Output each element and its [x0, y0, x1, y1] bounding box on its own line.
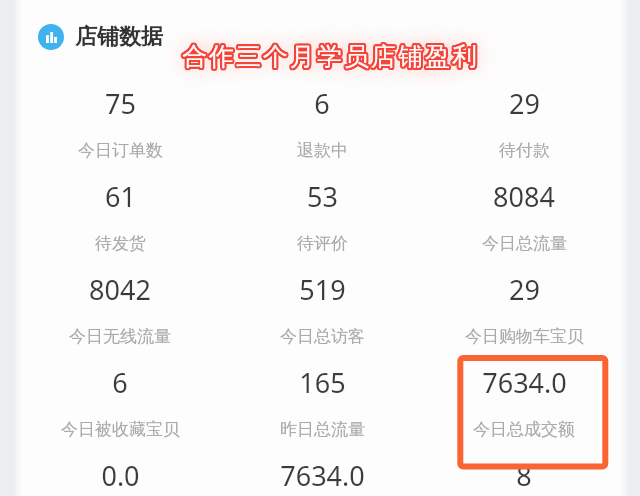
staticText: 今日总访客 — [280, 326, 365, 347]
staticText: 29 — [509, 85, 540, 122]
staticText: 今日总成交额 — [473, 419, 575, 440]
staticText: 今日订单数 — [78, 140, 163, 161]
button[interactable]: 7634.0 — [221, 454, 423, 491]
button[interactable]: 7634.0 — [423, 361, 625, 398]
button[interactable]: 519 — [221, 268, 423, 305]
staticText: 待评价 — [297, 233, 348, 254]
button[interactable]: 61 — [19, 175, 221, 212]
staticText: 待付款 — [499, 140, 550, 161]
button[interactable]: 29 — [423, 82, 625, 119]
staticText: 今日购物车宝贝 — [465, 326, 584, 347]
button[interactable]: 6 — [221, 82, 423, 119]
staticText: 8042 — [89, 271, 151, 308]
staticText: 今日总流量 — [482, 233, 567, 254]
staticText: 165 — [299, 364, 346, 401]
button[interactable]: 53 — [221, 175, 423, 212]
staticText: 519 — [299, 271, 346, 308]
staticText: 昨日总流量 — [280, 419, 365, 440]
other: 店铺数据 — [38, 24, 64, 50]
button[interactable]: 店铺数据 — [38, 23, 163, 51]
staticText: 6 — [112, 364, 128, 401]
staticText: 53 — [307, 178, 338, 215]
staticText: 6 — [314, 85, 330, 122]
staticText: 退款中 — [297, 140, 348, 161]
button[interactable]: 6 — [19, 361, 221, 398]
staticText: 待发货 — [95, 233, 146, 254]
staticText: 8084 — [493, 178, 555, 215]
staticText: 今日无线流量 — [69, 326, 171, 347]
staticText: 61 — [105, 178, 136, 215]
button[interactable]: 8042 — [19, 268, 221, 305]
staticText: 今日被收藏宝贝 — [61, 419, 180, 440]
button[interactable]: 165 — [221, 361, 423, 398]
staticText: 7634.0 — [482, 364, 567, 401]
staticText: 7634.0 — [280, 457, 365, 494]
staticText: 店铺数据 — [75, 23, 163, 51]
button[interactable]: 8 — [423, 454, 625, 491]
staticText: 合作三个月学员店铺盈利 — [181, 41, 478, 72]
button[interactable]: 29 — [423, 268, 625, 305]
button[interactable]: 0.0 — [19, 454, 221, 491]
button[interactable]: 8084 — [423, 175, 625, 212]
staticText: 75 — [105, 85, 136, 122]
staticText: 8 — [516, 457, 532, 494]
staticText: 29 — [509, 271, 540, 308]
button[interactable]: 75 — [19, 82, 221, 119]
staticText: 0.0 — [101, 457, 140, 494]
